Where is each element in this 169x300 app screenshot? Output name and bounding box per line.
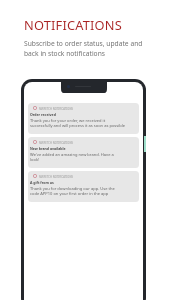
staticText: Thank you for downloading our app. Use t… <box>30 186 115 196</box>
staticText: A gift from us <box>30 180 54 185</box>
button[interactable]: FARFETCH NOTIFICATIONS <box>28 103 139 134</box>
staticText: FARFETCH NOTIFICATIONS <box>39 141 73 144</box>
button[interactable]: FARFETCH NOTIFICATIONS <box>28 137 139 168</box>
staticText: FARFETCH NOTIFICATIONS <box>39 175 73 178</box>
staticText: Thank you for your order, we received it… <box>30 118 126 128</box>
staticText: Order received <box>30 112 56 117</box>
staticText: FARFETCH NOTIFICATIONS <box>39 107 73 110</box>
staticText: NOTIFICATIONS <box>24 16 122 33</box>
staticText: New brand available <box>30 146 66 151</box>
button[interactable]: FARFETCH NOTIFICATIONS <box>28 171 139 202</box>
staticText: Subscribe to order status, update and ba… <box>24 39 143 58</box>
staticText: We've added an amazing new brand. Have a… <box>30 152 114 162</box>
